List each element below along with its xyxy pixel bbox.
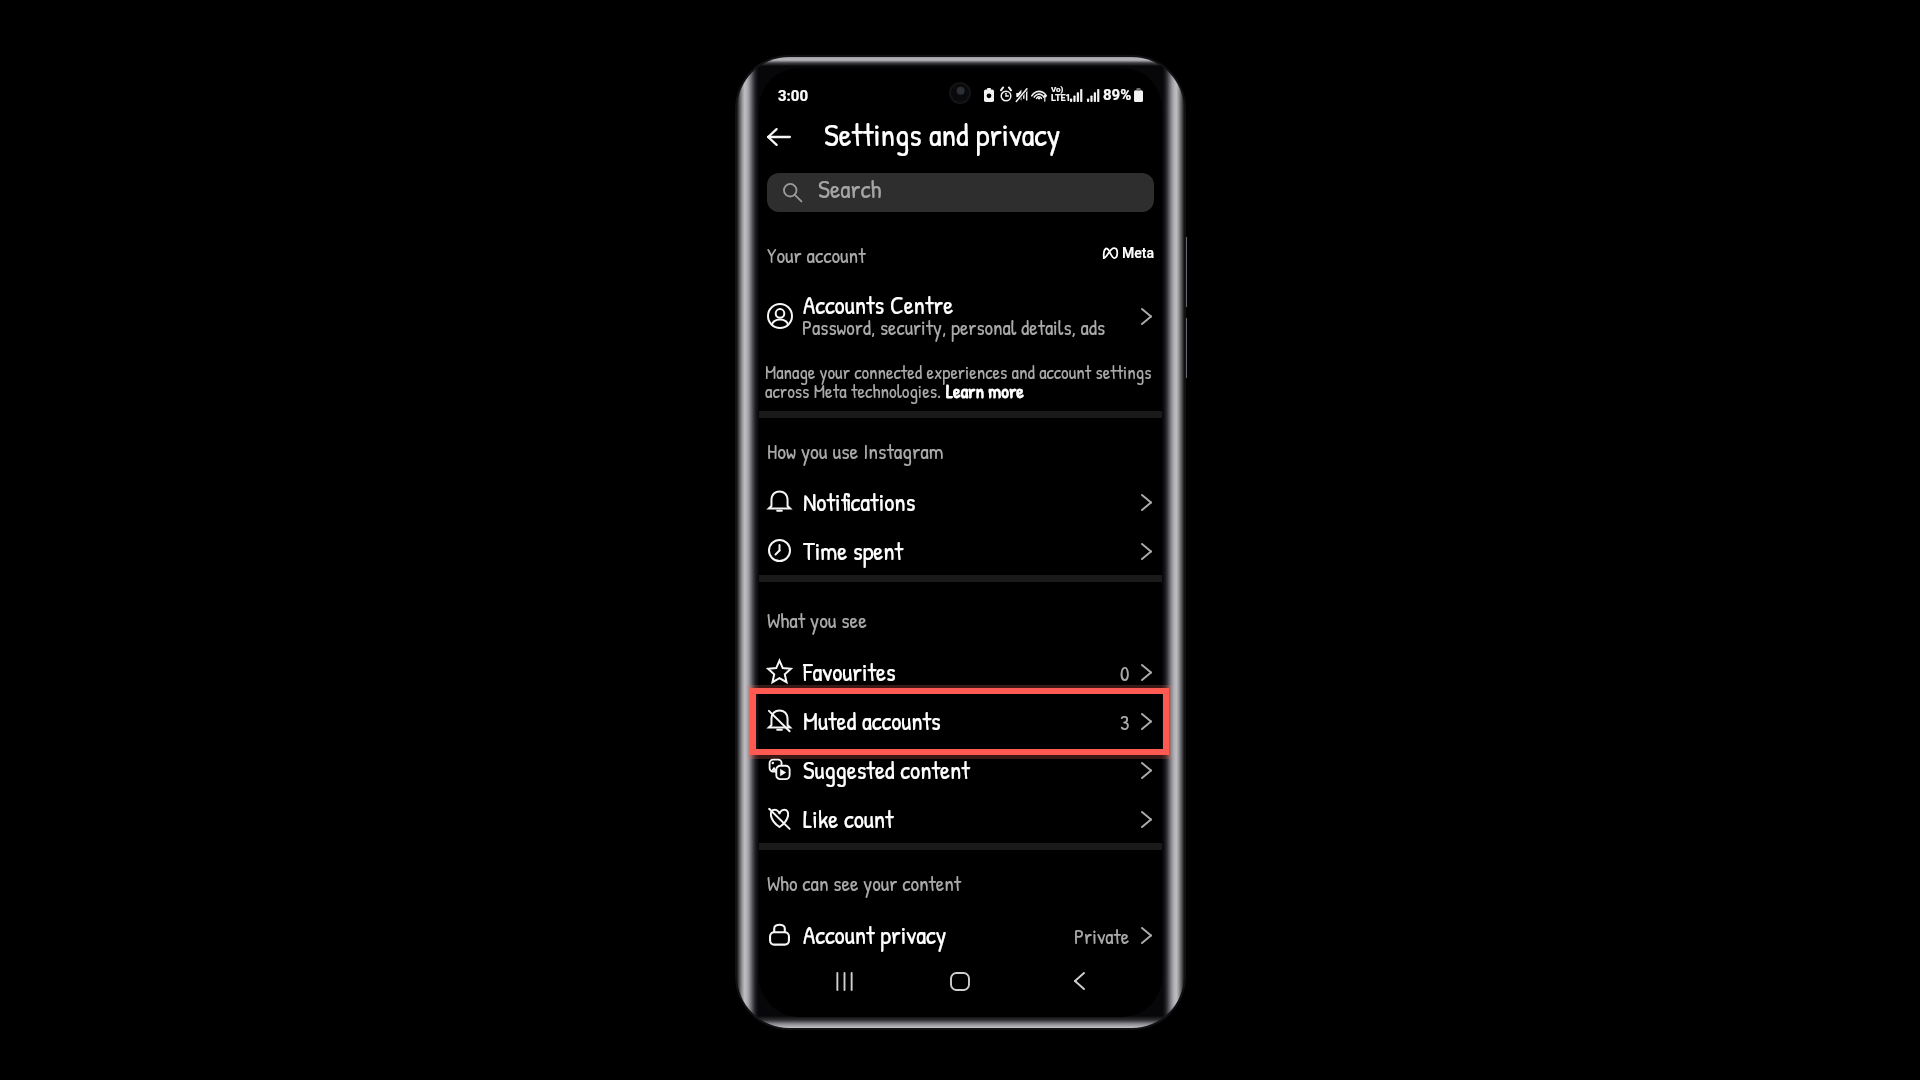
staticText: Your account <box>767 241 866 270</box>
staticText: 89% <box>1103 86 1132 104</box>
staticText: Suggested content <box>803 753 970 787</box>
staticText: Muted accounts <box>803 704 941 738</box>
staticText: Meta <box>1122 245 1155 261</box>
staticText: Time spent <box>803 534 904 568</box>
button[interactable]: Back <box>1057 959 1101 1003</box>
button[interactable] <box>759 526 1162 575</box>
staticText: How you use Instagram <box>767 436 944 465</box>
button[interactable] <box>759 745 1162 794</box>
button[interactable] <box>765 362 1160 406</box>
staticText: Private <box>1074 922 1130 948</box>
button[interactable]: Meta <box>1103 242 1156 264</box>
button[interactable] <box>759 647 1162 696</box>
staticText: What you see <box>767 606 867 635</box>
staticText: Settings and privacy <box>824 113 1061 156</box>
button[interactable] <box>759 794 1162 843</box>
staticText: Like count <box>803 802 894 836</box>
staticText: Account privacy <box>803 918 947 952</box>
staticText: 0 <box>1120 659 1130 685</box>
staticText: LTE1 <box>1051 93 1071 104</box>
staticText: Vo) <box>1051 85 1064 94</box>
button[interactable] <box>759 696 1162 745</box>
staticText: Who can see your content <box>767 869 962 898</box>
button[interactable]: Home <box>938 959 982 1003</box>
staticText: Accounts Centre <box>803 288 954 322</box>
staticText: Manage your connected experiences and ac… <box>765 359 1152 384</box>
staticText: Password, security, personal details, ad… <box>802 313 1106 341</box>
button[interactable] <box>759 286 1162 346</box>
button[interactable]: Back <box>759 117 800 157</box>
staticText: 3 <box>1120 708 1130 734</box>
staticText: 3:00 <box>778 87 809 105</box>
staticText: Learn more <box>946 378 1024 404</box>
button[interactable] <box>759 477 1162 526</box>
staticText: Favourites <box>803 655 896 689</box>
button[interactable]: Search <box>767 173 1154 212</box>
staticText: Search <box>818 173 882 206</box>
button[interactable]: Recent apps <box>822 959 866 1003</box>
button[interactable] <box>759 910 1162 959</box>
staticText: across Meta technologies. <box>765 378 946 404</box>
staticText: Notifications <box>803 485 916 519</box>
